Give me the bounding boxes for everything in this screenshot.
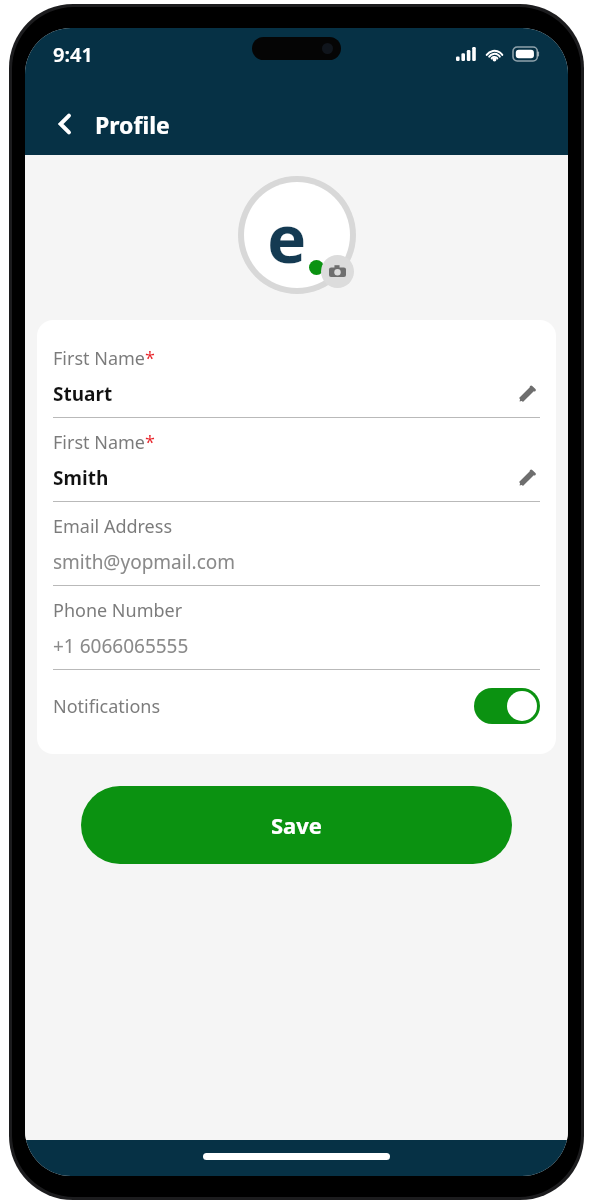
button[interactable]: Email Address <box>53 502 540 586</box>
button[interactable]: Change profile photo <box>238 176 356 294</box>
staticText: Stuart <box>53 381 113 407</box>
staticText: smith@yopmail.com <box>53 549 236 575</box>
staticText: Save <box>271 810 322 840</box>
button[interactable]: First Name* <box>53 418 540 502</box>
staticText: +1 6066065555 <box>53 633 189 659</box>
staticText: Profile <box>95 109 170 140</box>
button[interactable]: Edit First Name <box>514 381 540 407</box>
staticText: First Name* <box>53 346 155 371</box>
staticText: Smith <box>53 465 109 491</box>
staticText: e <box>267 192 307 282</box>
button[interactable]: Back <box>45 104 85 144</box>
staticText: Email Address <box>53 514 173 539</box>
button[interactable]: First Name* <box>53 334 540 418</box>
staticText: Notifications <box>53 694 161 719</box>
button[interactable]: Save <box>81 786 512 864</box>
staticText: Phone Number <box>53 598 183 623</box>
button[interactable]: Edit First Name <box>514 465 540 491</box>
button[interactable]: Notifications <box>53 670 540 742</box>
staticText: 9:41 <box>53 41 93 68</box>
staticText: First Name* <box>53 430 155 455</box>
button[interactable]: Phone Number <box>53 586 540 670</box>
